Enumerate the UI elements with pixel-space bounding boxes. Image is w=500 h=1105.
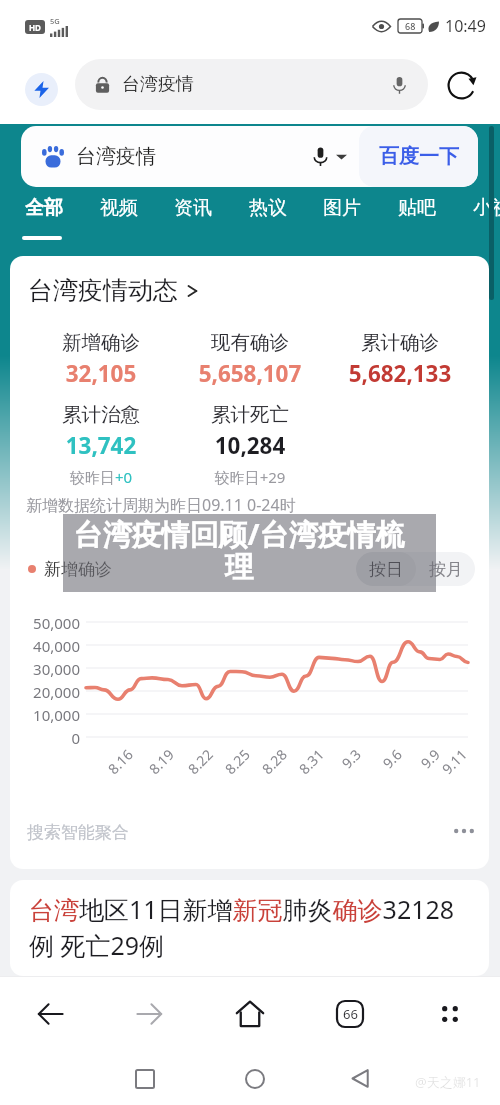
staticText: 8.31 (295, 745, 328, 778)
button[interactable]: 图片 (320, 196, 364, 220)
staticText: 按月 (429, 559, 463, 580)
button[interactable]: Turbo mode (25, 73, 58, 106)
staticText: 资讯 (171, 196, 215, 220)
staticText: 8.25 (221, 745, 254, 778)
staticText: 贴吧 (395, 196, 439, 220)
staticText: 9.3 (337, 745, 365, 772)
staticText: 较昨日+29 (175, 467, 325, 487)
staticText: 较昨日+0 (26, 467, 176, 487)
staticText: 视频 (97, 196, 141, 220)
button[interactable]: 视频 (97, 196, 141, 220)
button[interactable]: 按日 (356, 552, 416, 586)
button[interactable]: Recent apps (110, 1052, 180, 1105)
button[interactable]: More (454, 826, 474, 836)
staticText: 热议 (246, 196, 290, 220)
staticText: 台湾疫情动态 (28, 275, 178, 306)
button[interactable]: Menu (400, 976, 500, 1052)
button[interactable]: 全部 (22, 196, 66, 220)
button[interactable]: 百度一下 (359, 126, 478, 187)
button[interactable]: 资讯 (171, 196, 215, 220)
staticText: 累计死亡 (175, 402, 325, 427)
button[interactable]: Home (220, 1052, 290, 1105)
button[interactable]: Forward (100, 976, 200, 1052)
staticText: 台湾地区11日新增新冠肺炎确诊32128例 死亡29例 (29, 892, 456, 963)
staticText: 全部 (22, 196, 66, 220)
button[interactable]: Back (0, 976, 100, 1052)
staticText: 台湾疫情 (76, 144, 156, 169)
staticText: 10,284 (175, 430, 325, 461)
staticText: @天之娜11 (415, 1073, 481, 1091)
staticText: 8.16 (104, 745, 137, 778)
staticText: 现有确诊 (175, 330, 325, 355)
staticText: 68 (405, 20, 416, 32)
staticText: 百度一下 (379, 144, 459, 169)
staticText: 新增确诊 (26, 330, 176, 355)
staticText: 台湾疫情 (122, 73, 194, 96)
button[interactable]: 台湾疫情 (75, 59, 428, 110)
staticText: 0 (10, 728, 80, 748)
button[interactable]: 台湾地区11日新增新冠肺炎确诊32128例 死亡29例 (10, 880, 489, 976)
staticText: 9.9 (416, 745, 444, 772)
staticText: 10:49 (445, 15, 486, 37)
button[interactable]: 热议 (246, 196, 290, 220)
staticText: 9.11 (438, 745, 471, 778)
button[interactable]: 台湾疫情 (42, 126, 314, 187)
staticText: 50,000 (10, 613, 80, 633)
button[interactable]: 按月 (416, 552, 475, 586)
button[interactable]: 台湾疫情动态 (28, 275, 200, 306)
staticText: 5G (50, 16, 60, 26)
button[interactable]: Home (200, 976, 300, 1052)
staticText: 8.19 (145, 745, 178, 778)
staticText: 30,000 (10, 659, 80, 679)
staticText: 8.28 (258, 745, 291, 778)
button[interactable] (336, 153, 347, 161)
staticText: 9.6 (378, 745, 406, 772)
staticText: 小视 (470, 196, 500, 220)
staticText: 5,682,133 (325, 358, 475, 389)
staticText: 66 (343, 1005, 358, 1023)
other: Voice input (314, 147, 327, 166)
staticText: 20,000 (10, 682, 80, 702)
button[interactable]: 贴吧 (395, 196, 439, 220)
staticText: 13,742 (26, 430, 176, 461)
staticText: 10,000 (10, 705, 80, 725)
staticText: 台湾疫情回顾/台湾疫情梳理 (70, 514, 408, 586)
staticText: 搜索智能聚合 (27, 822, 129, 843)
staticText: HD (29, 22, 41, 33)
button[interactable]: Back (325, 1052, 395, 1105)
staticText: 5,658,107 (175, 358, 325, 389)
staticText: 32,105 (26, 358, 176, 389)
other: Voice search (393, 76, 406, 94)
button[interactable]: 小视 (470, 196, 500, 220)
staticText: 累计确诊 (325, 330, 475, 355)
staticText: 按日 (369, 559, 403, 580)
button[interactable]: Reload (444, 68, 478, 102)
staticText: 图片 (320, 196, 364, 220)
button[interactable]: Tabs: 66 open (300, 976, 400, 1052)
staticText: 8.22 (184, 745, 217, 778)
staticText: 40,000 (10, 636, 80, 656)
staticText: 新增数据统计周期为昨日09.11 0-24时 (26, 494, 296, 516)
staticText: 新增确诊 (44, 559, 112, 580)
staticText: 累计治愈 (26, 402, 176, 427)
